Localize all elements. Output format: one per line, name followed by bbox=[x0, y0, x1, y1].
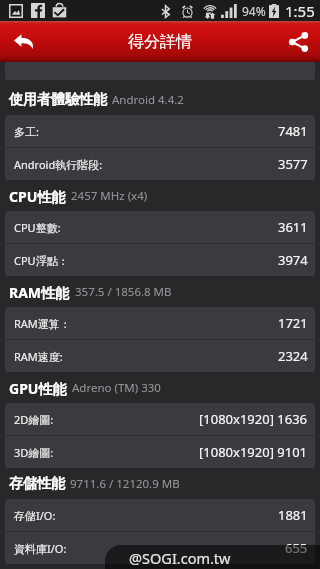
staticText: RAM性能 bbox=[9, 283, 70, 302]
button[interactable]: 資料庫I/O: bbox=[5, 532, 315, 564]
staticText: 1:55 bbox=[285, 1, 315, 21]
staticText: 3974 bbox=[278, 251, 308, 269]
button[interactable]: Share bbox=[276, 21, 320, 62]
staticText: [1080x1920] 1636 bbox=[199, 410, 308, 428]
staticText: CPU浮點： bbox=[14, 253, 69, 268]
staticText: 7481 bbox=[278, 122, 308, 140]
staticText: 1721 bbox=[278, 314, 308, 332]
staticText: 2D繪圖: bbox=[14, 412, 54, 427]
staticText: CPU整數: bbox=[14, 220, 61, 235]
button[interactable]: RAM速度: bbox=[5, 340, 315, 372]
staticText: 2324 bbox=[278, 347, 308, 365]
staticText: 94% bbox=[242, 3, 266, 19]
staticText: 3577 bbox=[278, 155, 308, 173]
button[interactable]: 3D繪圖: bbox=[5, 436, 315, 468]
staticText: 655 bbox=[285, 539, 308, 557]
staticText: 多工: bbox=[14, 124, 39, 139]
staticText: @SOGI.com.tw bbox=[129, 548, 231, 568]
button[interactable]: CPU整數: bbox=[5, 211, 315, 243]
button[interactable]: Android執行階段: bbox=[5, 148, 315, 180]
staticText: 使用者體驗性能 bbox=[9, 91, 107, 109]
staticText: GPU性能 bbox=[9, 379, 67, 398]
staticText: 存儲性能 bbox=[9, 475, 65, 493]
staticText: 存儲I/O: bbox=[14, 508, 56, 523]
staticText: 357.5 / 1856.8 MB bbox=[75, 284, 172, 300]
staticText: RAM速度: bbox=[14, 349, 63, 364]
staticText: [1080x1920] 9101 bbox=[199, 443, 308, 461]
button[interactable]: CPU浮點： bbox=[5, 244, 315, 276]
button[interactable]: 2D繪圖: bbox=[5, 403, 315, 435]
button[interactable]: Back bbox=[0, 21, 48, 62]
staticText: 1881 bbox=[278, 506, 308, 524]
button[interactable]: RAM運算： bbox=[5, 307, 315, 339]
button[interactable]: 存儲I/O: bbox=[5, 499, 315, 531]
staticText: Adreno (TM) 330 bbox=[72, 380, 161, 396]
staticText: Android執行階段: bbox=[14, 157, 103, 172]
staticText: Android 4.4.2 bbox=[112, 92, 184, 108]
staticText: 3D繪圖: bbox=[14, 445, 54, 460]
staticText: CPU性能 bbox=[9, 187, 66, 206]
button[interactable]: 多工: bbox=[5, 115, 315, 147]
staticText: 資料庫I/O: bbox=[14, 541, 67, 556]
staticText: 9711.6 / 12120.9 MB bbox=[70, 476, 180, 492]
staticText: 2457 MHz (x4) bbox=[71, 188, 148, 204]
staticText: 3611 bbox=[278, 218, 308, 236]
staticText: 得分詳情 bbox=[128, 32, 192, 52]
staticText: RAM運算： bbox=[14, 316, 71, 331]
